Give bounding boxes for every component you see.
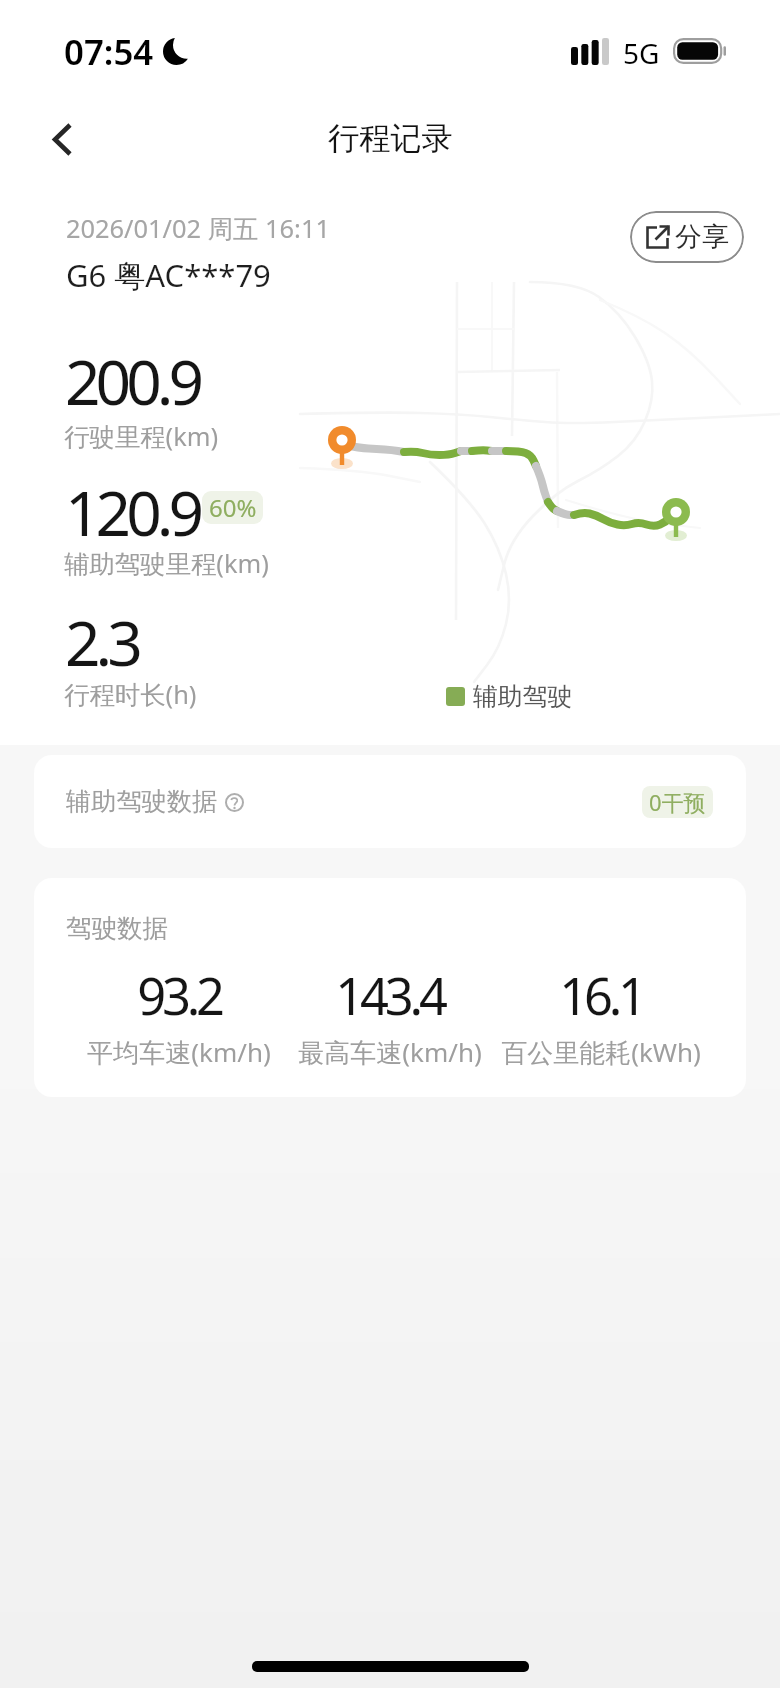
staticText: 行程时长(h)	[64, 677, 197, 712]
staticText: 百公里能耗(kWh)	[501, 1034, 701, 1070]
staticText: 120.9	[65, 470, 200, 555]
button[interactable]: 辅助驾驶数据	[34, 755, 746, 848]
button[interactable]: 分享	[630, 211, 744, 263]
staticText: 16.1	[559, 961, 643, 1030]
staticText: G6 粤AC***79	[66, 254, 271, 296]
staticText: 0干预	[649, 787, 706, 817]
staticText: 行程记录	[328, 119, 453, 158]
staticText: 93.2	[137, 961, 221, 1030]
staticText: 143.4	[335, 961, 444, 1030]
staticText: 分享	[675, 220, 729, 254]
staticText: 2.3	[65, 600, 138, 685]
staticText: 辅助驾驶里程(km)	[64, 546, 269, 581]
staticText: 2026/01/02 周五 16:11	[66, 211, 330, 246]
button[interactable]: Back	[18, 95, 106, 183]
staticText: 200.9	[65, 339, 200, 424]
staticText: 平均车速(km/h)	[87, 1034, 271, 1070]
staticText: 行驶里程(km)	[64, 419, 219, 454]
staticText: 5G	[623, 34, 660, 72]
staticText: 60%	[209, 491, 257, 524]
staticText: 驾驶数据	[66, 912, 168, 944]
staticText: 最高车速(km/h)	[298, 1034, 482, 1070]
staticText: 07:54	[64, 28, 154, 75]
staticText: 辅助驾驶数据	[66, 786, 218, 818]
staticText: 辅助驾驶	[473, 681, 573, 712]
